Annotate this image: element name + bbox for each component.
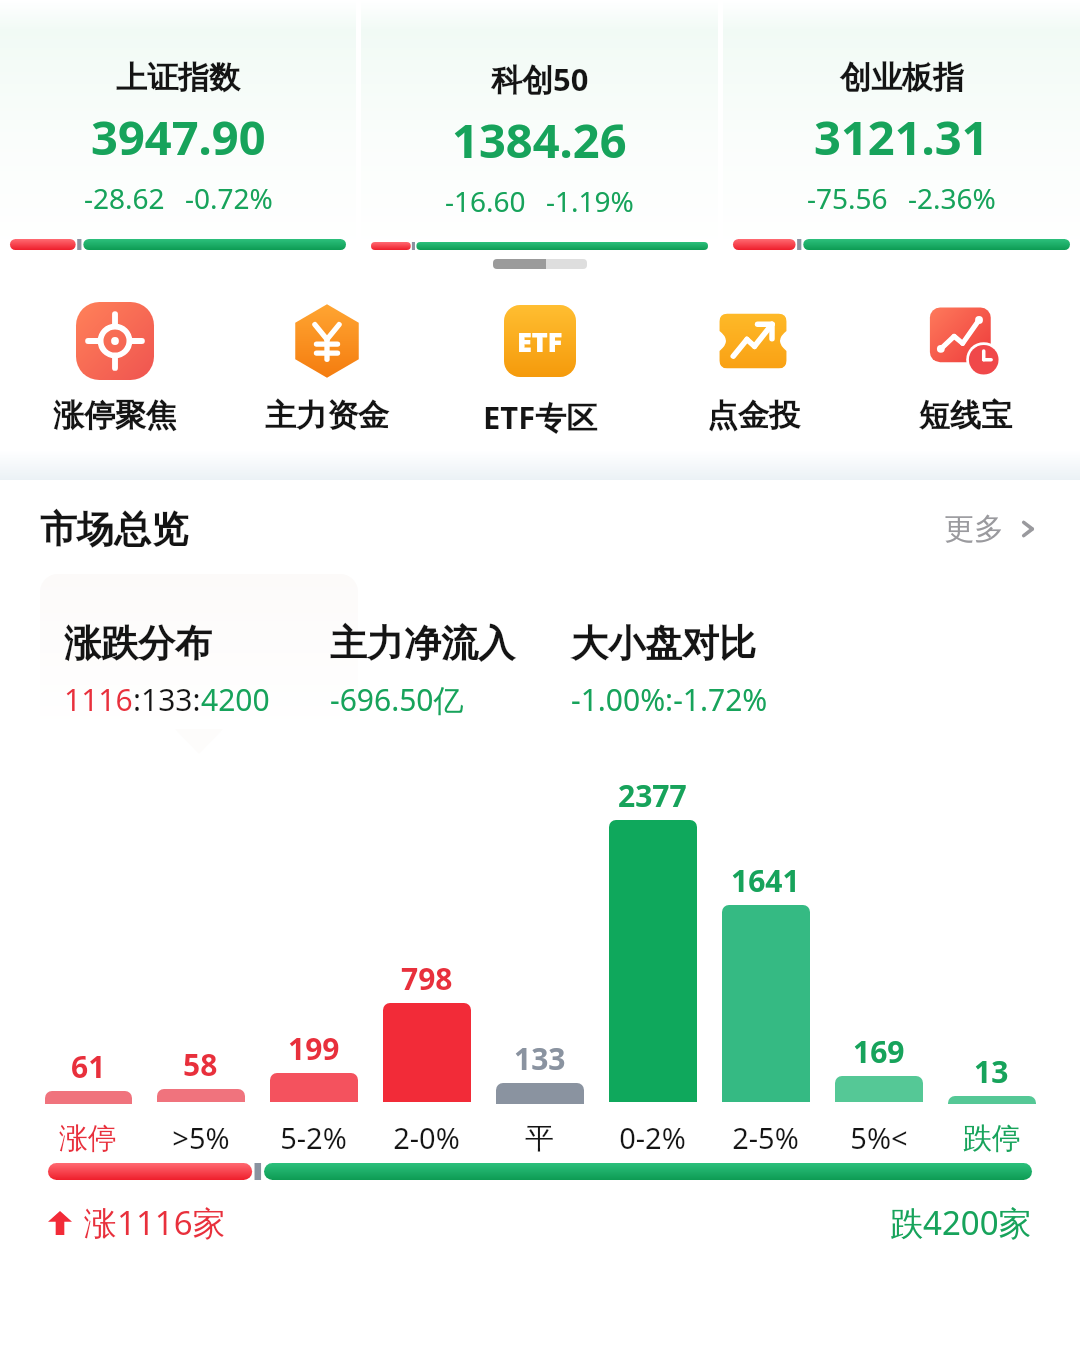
staticText: 3121.31 [814, 105, 989, 169]
staticText: ETF [517, 323, 563, 360]
staticText: -75.56 [807, 179, 888, 217]
button[interactable]: 创业板指 [723, 0, 1080, 250]
button[interactable]: 主力资金 [229, 296, 425, 437]
button[interactable]: 169 [822, 747, 935, 1157]
button[interactable]: 58 [144, 747, 257, 1157]
button[interactable]: 199 [257, 747, 370, 1157]
staticText: 科创50 [491, 58, 589, 100]
staticText: 点金投 [707, 396, 800, 435]
staticText: 跌停 [963, 1120, 1021, 1157]
staticText: -2.36% [908, 179, 996, 217]
staticText: 169 [853, 1031, 905, 1072]
button[interactable]: 涨停聚焦 [17, 296, 213, 437]
staticText: 2377 [618, 775, 687, 816]
staticText: 主力净流入 [330, 620, 515, 667]
button[interactable]: ETF专区 [442, 296, 638, 440]
button[interactable]: 1641 [709, 747, 822, 1157]
staticText: :133: [133, 679, 201, 720]
staticText: -1.00%:-1.72% [571, 679, 768, 720]
staticText: 市场总览 [40, 506, 188, 553]
staticText: 13 [974, 1051, 1009, 1092]
staticText: 1116 [64, 679, 133, 720]
staticText: 1384.26 [452, 108, 627, 172]
staticText: 4200 [201, 679, 270, 720]
staticText: 2-0% [393, 1118, 460, 1157]
staticText: 跌4200家 [890, 1200, 1032, 1245]
button[interactable]: 13 [935, 747, 1048, 1157]
button[interactable]: 涨跌分布 [64, 620, 270, 720]
other: 短线宝 [926, 302, 1004, 380]
button[interactable]: 科创50 [361, 0, 718, 250]
button[interactable]: 上证指数 [0, 0, 356, 250]
staticText: 涨跌分布 [64, 620, 212, 667]
other: 点金投 [715, 303, 791, 379]
button[interactable] [40, 574, 358, 732]
button[interactable]: 主力净流入 [330, 620, 515, 720]
button[interactable]: 点金投 [655, 296, 851, 437]
staticText: 0-2% [619, 1118, 686, 1157]
staticText: -1.19% [546, 182, 634, 220]
staticText: 3947.90 [91, 105, 266, 169]
staticText: 平 [525, 1120, 554, 1157]
staticText: >5% [172, 1118, 230, 1157]
staticText: -0.72% [185, 179, 273, 217]
button[interactable]: 短线宝 [867, 296, 1063, 437]
button[interactable]: 798 [370, 747, 483, 1157]
staticText: 1641 [731, 860, 800, 901]
staticText: 涨停 [59, 1120, 117, 1157]
staticText: 199 [288, 1028, 340, 1069]
staticText: 短线宝 [919, 396, 1012, 435]
staticText: 2-5% [732, 1118, 799, 1157]
button[interactable]: 2377 [596, 747, 709, 1157]
staticText: 133 [514, 1038, 566, 1079]
staticText: -696.50亿 [330, 679, 464, 720]
staticText: 创业板指 [840, 58, 964, 97]
button[interactable]: 61 [32, 747, 144, 1157]
staticText: 涨停聚焦 [53, 396, 177, 435]
button[interactable]: 大小盘对比 [571, 620, 768, 720]
staticText: 798 [401, 958, 453, 999]
staticText: ETF专区 [483, 396, 598, 438]
staticText: 61 [71, 1046, 106, 1087]
staticText: 58 [183, 1044, 218, 1085]
staticText: 上证指数 [116, 58, 240, 97]
staticText: 涨1116家 [84, 1200, 226, 1245]
staticText: 更多 [944, 510, 1004, 548]
staticText: 大小盘对比 [571, 620, 756, 667]
staticText: 主力资金 [265, 396, 389, 435]
other: 主力资金 [288, 302, 366, 380]
staticText: -28.62 [84, 179, 165, 217]
button[interactable]: 更多 [938, 504, 1046, 554]
other: 涨停聚焦 [76, 302, 154, 380]
other: ETF专区 [504, 305, 576, 377]
staticText: 5-2% [280, 1118, 347, 1157]
staticText: -16.60 [445, 182, 526, 220]
button[interactable]: 133 [483, 747, 596, 1157]
staticText: 5%< [850, 1118, 908, 1157]
